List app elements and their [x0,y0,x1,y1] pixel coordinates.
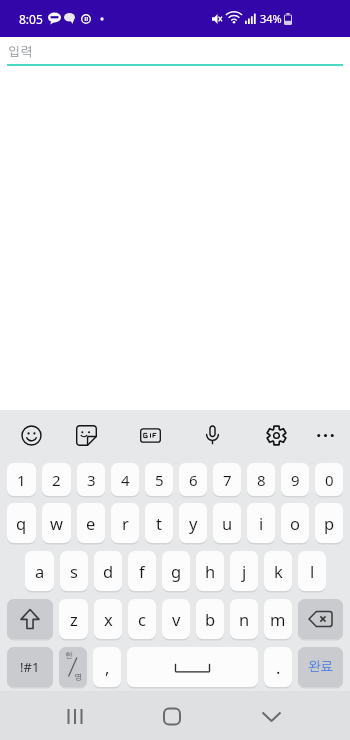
staticText: 2 [52,470,61,490]
button[interactable]: j [230,551,258,591]
staticText: 8 [257,470,266,490]
staticText: l [310,560,315,582]
button[interactable] [233,691,350,740]
button[interactable]: . [264,647,292,687]
staticText: , [105,656,110,678]
button[interactable]: 4 [111,463,139,496]
staticText: b [205,608,216,630]
button[interactable]: q [7,503,36,543]
button[interactable]: 6 [179,463,207,496]
button[interactable]: n [230,599,258,639]
staticText: 5 [155,470,164,490]
button[interactable] [14,418,48,452]
staticText: s [70,560,78,582]
staticText: e [86,512,96,534]
button[interactable]: p [315,503,343,543]
button[interactable] [127,647,258,687]
staticText: u [222,512,233,534]
staticText: m [270,608,286,630]
button[interactable] [298,599,343,639]
button[interactable]: !#1 [7,647,53,687]
button[interactable]: c [128,599,156,639]
button[interactable]: , [93,647,121,687]
staticText: . [276,656,281,678]
staticText: z [70,608,78,630]
staticText: a [35,560,45,582]
button[interactable]: 7 [213,463,241,496]
button[interactable]: 3 [77,463,105,496]
staticText: y [189,512,198,534]
staticText: 3 [87,470,96,490]
staticText: 34% [260,11,282,26]
button[interactable] [308,418,342,452]
button[interactable]: i [247,503,275,543]
button[interactable]: v [162,599,190,639]
staticText: w [50,512,63,534]
staticText: 완료 [308,661,333,674]
button[interactable]: z [59,599,88,639]
button[interactable]: f [128,551,156,591]
button[interactable]: 0 [315,463,343,496]
button[interactable]: k [264,551,292,591]
staticText: t [156,512,162,534]
staticText: 6 [189,470,198,490]
button[interactable]: h [196,551,224,591]
staticText: 8:05 [19,11,43,27]
button[interactable]: 입력 [0,37,350,66]
staticText: 입력 [8,46,33,59]
button[interactable]: w [42,503,71,543]
button[interactable]: 한 [59,647,87,687]
staticText: r [122,512,129,534]
button[interactable] [133,418,167,452]
staticText: n [239,608,250,630]
staticText: f [139,560,145,582]
staticText: k [274,560,283,582]
button[interactable]: 완료 [298,647,343,687]
staticText: c [138,608,146,630]
staticText: p [324,512,335,534]
staticText: 영 [74,674,82,682]
staticText: o [290,512,300,534]
staticText: 1 [17,470,26,490]
button[interactable]: d [94,551,122,591]
button[interactable] [195,418,229,452]
staticText: 0 [325,470,334,490]
button[interactable]: 8 [247,463,275,496]
button[interactable]: 2 [42,463,71,496]
button[interactable]: l [298,551,326,591]
staticText: 9 [291,470,300,490]
staticText: x [104,608,113,630]
button[interactable]: b [196,599,224,639]
button[interactable]: a [25,551,54,591]
staticText: j [242,560,247,582]
button[interactable]: t [145,503,173,543]
button[interactable]: y [179,503,207,543]
button[interactable]: 1 [7,463,36,496]
staticText: q [16,512,27,534]
staticText: h [205,560,216,582]
staticText: !#1 [20,658,40,676]
staticText: d [103,560,114,582]
staticText: 7 [223,470,232,490]
staticText: v [172,608,181,630]
button[interactable] [69,418,103,452]
button[interactable]: s [60,551,88,591]
button[interactable]: r [111,503,139,543]
button[interactable]: u [213,503,241,543]
button[interactable]: 9 [281,463,309,496]
button[interactable] [7,599,53,639]
button[interactable] [0,691,116,740]
staticText: i [259,512,264,534]
button[interactable]: o [281,503,309,543]
button[interactable]: 5 [145,463,173,496]
button[interactable]: x [94,599,122,639]
button[interactable]: g [162,551,190,591]
button[interactable]: e [77,503,105,543]
button[interactable]: m [264,599,292,639]
staticText: g [171,560,182,582]
button[interactable] [116,691,233,740]
button[interactable] [259,418,293,452]
staticText: 4 [121,470,130,490]
staticText: 한 [65,652,73,660]
